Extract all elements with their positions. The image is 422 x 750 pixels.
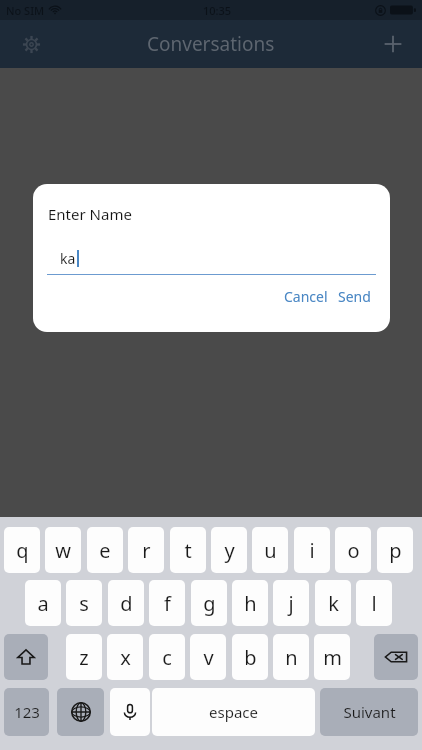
button[interactable]: New conversation bbox=[376, 27, 410, 61]
staticText: j bbox=[288, 590, 294, 617]
button[interactable]: i bbox=[294, 527, 330, 573]
button[interactable]: f bbox=[149, 580, 185, 626]
staticText: u bbox=[264, 537, 277, 564]
staticText: f bbox=[164, 590, 171, 617]
staticText: m bbox=[323, 644, 342, 671]
button[interactable]: Dictate bbox=[110, 688, 150, 736]
staticText: Conversations bbox=[147, 31, 275, 57]
button[interactable]: n bbox=[273, 634, 309, 680]
staticText: q bbox=[16, 537, 29, 564]
staticText: 123 bbox=[14, 702, 40, 722]
button[interactable]: l bbox=[356, 580, 392, 626]
staticText: l bbox=[371, 590, 377, 617]
button[interactable]: Settings bbox=[14, 27, 48, 61]
staticText: p bbox=[389, 537, 402, 564]
button[interactable]: ka bbox=[47, 241, 376, 275]
button[interactable]: o bbox=[335, 527, 371, 573]
staticText: e bbox=[99, 537, 111, 564]
button[interactable]: Shift bbox=[4, 634, 48, 680]
button[interactable]: u bbox=[252, 527, 288, 573]
button[interactable]: e bbox=[87, 527, 123, 573]
button[interactable]: m bbox=[314, 634, 350, 680]
staticText: n bbox=[285, 644, 298, 671]
staticText: Enter Name bbox=[48, 204, 132, 224]
button[interactable]: 123 bbox=[4, 688, 49, 736]
button[interactable]: t bbox=[170, 527, 206, 573]
staticText: z bbox=[79, 644, 89, 671]
button[interactable]: Delete bbox=[374, 634, 418, 680]
staticText: s bbox=[79, 590, 89, 617]
button[interactable]: x bbox=[107, 634, 143, 680]
button[interactable]: r bbox=[128, 527, 164, 573]
button[interactable]: w bbox=[45, 527, 81, 573]
button[interactable]: d bbox=[108, 580, 144, 626]
button[interactable]: y bbox=[211, 527, 247, 573]
staticText: c bbox=[162, 644, 172, 671]
staticText: Cancel bbox=[284, 287, 328, 306]
button[interactable]: p bbox=[377, 527, 413, 573]
staticText: d bbox=[120, 590, 133, 617]
staticText: No SIM bbox=[6, 3, 45, 18]
staticText: t bbox=[184, 537, 192, 564]
button[interactable]: k bbox=[315, 580, 351, 626]
button[interactable]: z bbox=[66, 634, 102, 680]
button[interactable]: Cancel bbox=[281, 283, 331, 310]
staticText: h bbox=[244, 590, 257, 617]
button[interactable]: g bbox=[191, 580, 227, 626]
button[interactable]: j bbox=[273, 580, 309, 626]
button[interactable]: v bbox=[190, 634, 226, 680]
staticText: espace bbox=[209, 702, 258, 722]
button[interactable]: espace bbox=[152, 688, 315, 736]
button[interactable]: a bbox=[25, 580, 61, 626]
button[interactable]: c bbox=[149, 634, 185, 680]
button[interactable]: h bbox=[232, 580, 268, 626]
staticText: 10:35 bbox=[203, 3, 232, 18]
staticText: b bbox=[244, 644, 257, 671]
staticText: Suivant bbox=[343, 702, 396, 722]
button[interactable]: Change keyboard bbox=[57, 688, 104, 736]
staticText: o bbox=[347, 537, 360, 564]
staticText: k bbox=[328, 590, 339, 617]
button[interactable]: Send bbox=[335, 283, 374, 310]
button[interactable]: s bbox=[66, 580, 102, 626]
staticText: r bbox=[142, 537, 151, 564]
staticText: a bbox=[37, 590, 49, 617]
button[interactable]: b bbox=[232, 634, 268, 680]
button[interactable]: Suivant bbox=[320, 688, 418, 736]
staticText: y bbox=[224, 537, 235, 564]
staticText: ka bbox=[60, 249, 76, 268]
staticText: w bbox=[55, 537, 71, 564]
button[interactable]: q bbox=[4, 527, 40, 573]
staticText: i bbox=[309, 537, 315, 564]
staticText: Send bbox=[338, 287, 371, 306]
staticText: g bbox=[203, 590, 216, 617]
staticText: v bbox=[203, 644, 214, 671]
staticText: x bbox=[120, 644, 131, 671]
